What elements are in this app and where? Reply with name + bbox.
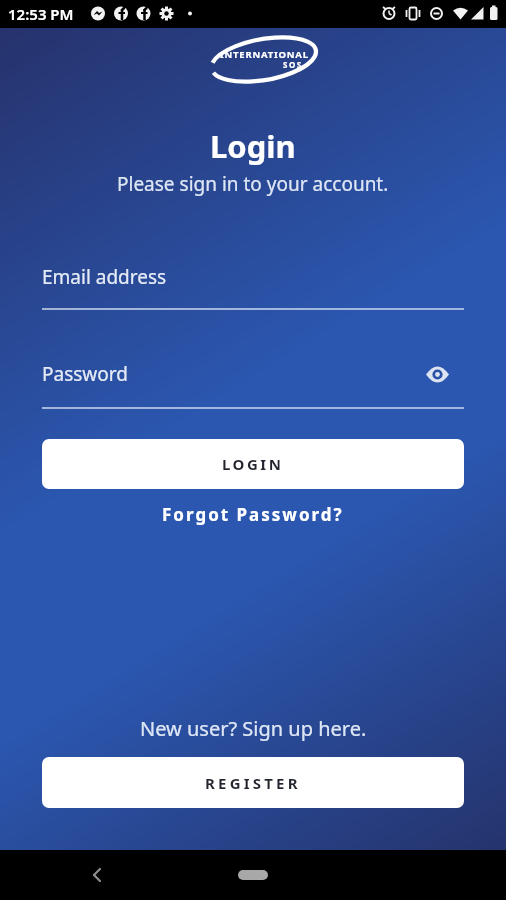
staticText: LOGIN xyxy=(222,454,284,474)
staticText: Login xyxy=(210,125,296,167)
button[interactable] xyxy=(238,870,268,880)
staticText: REGISTER xyxy=(205,773,301,793)
staticText: Please sign in to your account. xyxy=(117,171,389,197)
staticText: INTERNATIONAL xyxy=(220,48,309,61)
button[interactable]: LOGIN xyxy=(42,439,464,489)
staticText: Password xyxy=(42,361,426,387)
staticText: 12:53 PM xyxy=(8,4,74,24)
button[interactable]: REGISTER xyxy=(42,757,464,808)
button[interactable] xyxy=(82,860,112,890)
staticText: SOS xyxy=(283,59,303,70)
button[interactable]: Email address xyxy=(42,264,464,310)
button[interactable]: Password xyxy=(42,361,464,409)
button[interactable]: Forgot Password? xyxy=(162,503,344,526)
staticText: New user? Sign up here. xyxy=(140,715,367,742)
staticText: Email address xyxy=(42,264,167,290)
button[interactable] xyxy=(426,366,449,383)
